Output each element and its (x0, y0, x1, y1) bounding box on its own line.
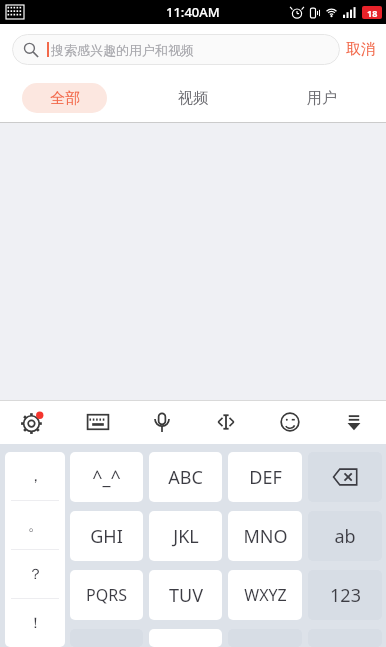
staticText: ab (334, 524, 356, 549)
button[interactable]: Move cursor (194, 400, 258, 444)
button[interactable]: 视频 (128, 74, 257, 122)
staticText: ！ (28, 614, 43, 633)
staticText: DEF (249, 465, 282, 490)
button[interactable]: WXYZ (228, 570, 302, 620)
staticText: GHI (90, 524, 123, 549)
button[interactable]: ab (308, 511, 382, 561)
button[interactable]: ABC (149, 452, 222, 502)
button[interactable]: 用户 (257, 74, 386, 122)
staticText: 取消 (346, 40, 376, 59)
button[interactable]: JKL (149, 511, 222, 561)
button[interactable]: 全部 (0, 74, 128, 122)
button[interactable]: DEF (228, 452, 302, 502)
staticText: 11:40AM (166, 3, 220, 21)
staticText: WXYZ (244, 584, 287, 606)
button[interactable]: Backspace (308, 452, 382, 502)
button[interactable]: TUV (149, 570, 222, 620)
staticText: TUV (169, 583, 203, 608)
staticText: 18 (367, 7, 378, 19)
button[interactable]: Emoji (258, 400, 322, 444)
staticText: MNO (243, 524, 288, 549)
button[interactable]: ^_^ (70, 452, 143, 502)
button[interactable]: ？ (5, 550, 65, 599)
button[interactable]: ！ (5, 599, 65, 647)
staticText: 搜索感兴趣的用户和视频 (51, 42, 194, 58)
button[interactable]: ， (5, 452, 65, 501)
button[interactable] (149, 629, 222, 647)
button[interactable]: GHI (70, 511, 143, 561)
staticText: 用户 (307, 89, 337, 108)
button[interactable]: 取消 (336, 24, 386, 74)
staticText: PQRS (86, 584, 127, 606)
button[interactable]: Voice input (130, 400, 194, 444)
button[interactable]: 。 (5, 501, 65, 550)
button[interactable]: Settings (0, 400, 65, 444)
staticText: ？ (28, 565, 43, 584)
button[interactable]: PQRS (70, 570, 143, 620)
button[interactable]: 123 (308, 570, 382, 620)
staticText: 123 (330, 583, 361, 608)
staticText: 视频 (178, 89, 208, 108)
staticText: ^_^ (92, 465, 121, 490)
button[interactable]: MNO (228, 511, 302, 561)
button[interactable]: Hide keyboard (322, 400, 386, 444)
button[interactable]: 搜索感兴趣的用户和视频 (12, 34, 340, 65)
staticText: JKL (173, 524, 199, 549)
staticText: ， (28, 467, 43, 486)
staticText: ABC (168, 465, 203, 490)
staticText: 。 (28, 516, 43, 535)
staticText: 全部 (50, 89, 80, 108)
button[interactable]: Keyboard (65, 400, 130, 444)
